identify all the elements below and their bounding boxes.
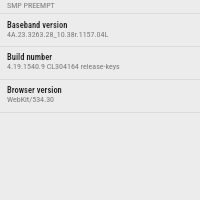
staticText: Baseband version bbox=[7, 20, 68, 30]
button[interactable]: SMP PREEMPT bbox=[0, 0, 200, 13]
staticText: 4.19.1540.9 CL304164 release-keys bbox=[7, 62, 120, 71]
button[interactable]: Browser version bbox=[0, 80, 200, 112]
staticText: WebKit/534.30 bbox=[7, 95, 55, 104]
staticText: Browser version bbox=[7, 85, 62, 95]
staticText: SMP PREEMPT bbox=[7, 1, 55, 10]
staticText: 4A.23.3263.28_10.38r.1157.04L bbox=[7, 30, 109, 39]
staticText: Build number bbox=[7, 52, 53, 62]
button[interactable]: Baseband version bbox=[0, 14, 200, 46]
button[interactable]: Build number bbox=[0, 47, 200, 79]
